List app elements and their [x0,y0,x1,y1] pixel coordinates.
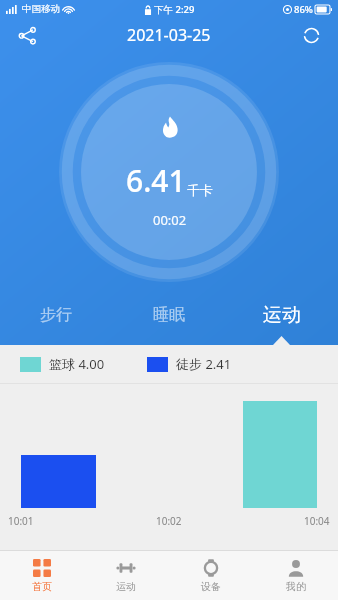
staticText: 下午 2:29 [154,3,195,16]
button[interactable]: 首页 [0,551,84,600]
staticText: 睡眠 [153,305,185,325]
staticText: 10:04 [304,514,330,528]
staticText: 86% [294,3,313,16]
staticText: 首页 [32,580,52,593]
staticText: 中国移动 [22,3,60,15]
staticText: 步行 [40,305,72,325]
button[interactable]: 运动 [225,285,338,345]
button[interactable]: Share [10,18,44,52]
staticText: 篮球 4.00 [49,355,105,373]
staticText: 运动 [116,580,136,593]
button[interactable]: 设备 [168,551,253,600]
staticText: 6.41 [126,160,186,201]
staticText: 10:02 [156,514,182,528]
staticText: 千卡 [187,182,213,198]
staticText: 我的 [286,580,306,593]
button[interactable]: 我的 [253,551,338,600]
staticText: 2021-03-25 [127,24,211,46]
button[interactable]: 运动 [84,551,168,600]
staticText: 运动 [263,303,301,327]
button[interactable]: 睡眠 [112,285,225,345]
button[interactable]: 步行 [0,285,112,345]
staticText: 10:01 [8,514,34,528]
staticText: 设备 [201,580,221,593]
staticText: 00:02 [153,211,187,229]
button[interactable]: Refresh [294,18,328,52]
staticText: 徒步 2.41 [176,355,232,373]
